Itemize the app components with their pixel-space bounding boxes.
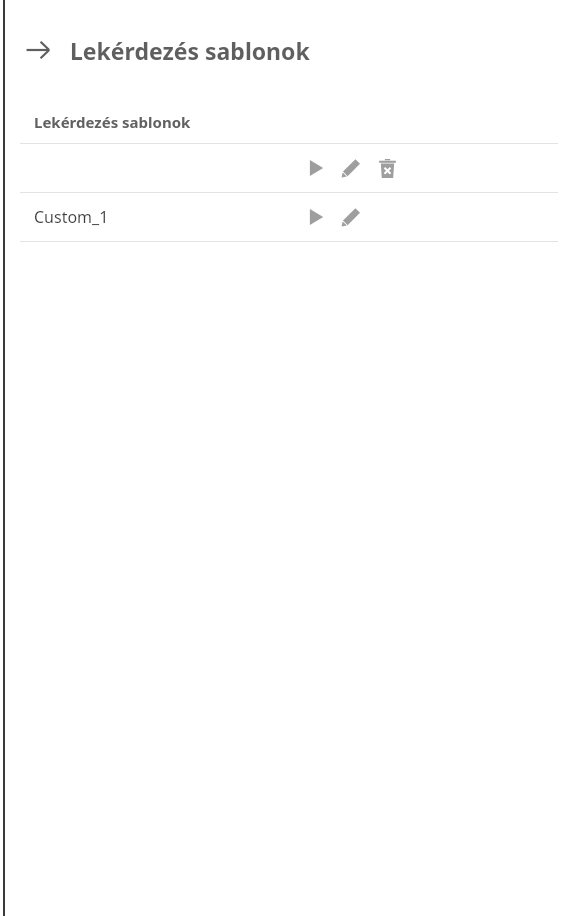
button[interactable]: Run (298, 199, 334, 235)
button[interactable]: Run (0, 144, 573, 192)
staticText: Lekérdezés sablonok (70, 35, 310, 66)
button[interactable]: Custom_1 (0, 193, 573, 241)
staticText: Lekérdezés sablonok (34, 112, 191, 132)
button[interactable]: Edit (333, 199, 369, 235)
button[interactable]: Edit (333, 150, 369, 186)
staticText: Custom_1 (34, 206, 109, 228)
button[interactable]: Run (298, 150, 334, 186)
button[interactable]: Delete (369, 150, 405, 186)
button[interactable]: Back (14, 26, 62, 74)
